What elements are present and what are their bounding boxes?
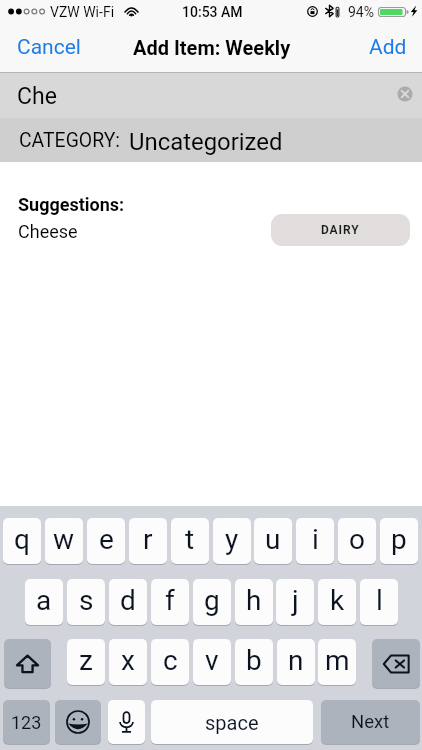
staticText: s bbox=[79, 584, 94, 617]
button[interactable]: CATEGORY: bbox=[0, 118, 422, 162]
staticText: q bbox=[14, 523, 30, 556]
staticText: j bbox=[292, 584, 299, 617]
button[interactable]: s bbox=[67, 579, 105, 625]
staticText: Add bbox=[369, 35, 407, 60]
staticText: a bbox=[36, 584, 52, 617]
button[interactable]: x bbox=[109, 639, 147, 685]
button[interactable]: Next bbox=[321, 700, 420, 744]
staticText: n bbox=[288, 644, 304, 677]
button[interactable]: Dictation bbox=[108, 700, 145, 744]
button[interactable]: h bbox=[235, 579, 273, 625]
staticText: u bbox=[265, 523, 281, 556]
button[interactable]: q bbox=[3, 518, 41, 564]
button[interactable]: k bbox=[318, 579, 356, 625]
button[interactable]: j bbox=[276, 579, 314, 625]
staticText: c bbox=[163, 644, 178, 677]
button[interactable]: o bbox=[338, 518, 376, 564]
button[interactable]: Emoji bbox=[55, 700, 101, 744]
button[interactable]: Backspace bbox=[372, 639, 420, 688]
staticText: CATEGORY: bbox=[19, 129, 121, 152]
staticText: i bbox=[312, 523, 319, 556]
staticText: 10:53 AM bbox=[182, 4, 243, 20]
button[interactable]: i bbox=[296, 518, 334, 564]
button[interactable]: d bbox=[109, 579, 147, 625]
button[interactable]: t bbox=[171, 518, 209, 564]
staticText: Cancel bbox=[17, 35, 81, 60]
staticText: DAIRY bbox=[321, 223, 360, 237]
button[interactable]: 123 bbox=[3, 700, 50, 744]
button[interactable]: v bbox=[193, 639, 231, 685]
staticText: 94% bbox=[348, 4, 374, 20]
button[interactable]: Shift bbox=[4, 639, 51, 688]
staticText: y bbox=[225, 523, 239, 556]
button[interactable]: Clear text bbox=[391, 80, 419, 108]
button[interactable]: Cancel bbox=[6, 28, 92, 72]
button[interactable]: f bbox=[151, 579, 189, 625]
staticText: z bbox=[79, 644, 93, 677]
staticText: k bbox=[330, 584, 345, 617]
staticText: space bbox=[205, 711, 259, 734]
button[interactable]: DAIRY bbox=[271, 214, 410, 246]
button[interactable]: Add bbox=[358, 28, 418, 72]
button[interactable]: e bbox=[87, 518, 125, 564]
staticText: t bbox=[185, 523, 195, 556]
button[interactable]: u bbox=[254, 518, 292, 564]
button[interactable]: l bbox=[360, 579, 398, 625]
staticText: Next bbox=[351, 711, 390, 733]
staticText: h bbox=[246, 584, 262, 617]
staticText: d bbox=[120, 584, 136, 617]
button[interactable]: a bbox=[25, 579, 63, 625]
staticText: Add Item: Weekly bbox=[133, 36, 291, 59]
staticText: e bbox=[99, 523, 114, 556]
staticText: w bbox=[53, 523, 75, 556]
staticText: Suggestions: bbox=[18, 194, 125, 215]
staticText: f bbox=[165, 584, 175, 617]
button[interactable]: p bbox=[380, 518, 418, 564]
button[interactable]: r bbox=[129, 518, 167, 564]
staticText: l bbox=[376, 584, 383, 617]
staticText: v bbox=[205, 644, 219, 677]
button[interactable]: z bbox=[67, 639, 105, 685]
button[interactable]: g bbox=[193, 579, 231, 625]
button[interactable]: b bbox=[235, 639, 273, 685]
button[interactable]: space bbox=[151, 700, 313, 744]
staticText: b bbox=[246, 644, 262, 677]
staticText: x bbox=[121, 644, 135, 677]
staticText: Che bbox=[17, 83, 57, 110]
button[interactable]: n bbox=[277, 639, 315, 685]
button[interactable]: y bbox=[213, 518, 251, 564]
button[interactable]: c bbox=[151, 639, 189, 685]
staticText: 123 bbox=[11, 712, 42, 733]
staticText: Cheese bbox=[18, 221, 78, 242]
staticText: p bbox=[391, 523, 407, 556]
staticText: g bbox=[204, 584, 220, 617]
staticText: o bbox=[349, 523, 365, 556]
button[interactable]: m bbox=[318, 639, 356, 685]
staticText: r bbox=[143, 523, 153, 556]
staticText: VZW Wi-Fi bbox=[50, 4, 115, 20]
staticText: m bbox=[325, 644, 350, 677]
button[interactable]: w bbox=[45, 518, 83, 564]
staticText: Uncategorized bbox=[129, 128, 283, 156]
